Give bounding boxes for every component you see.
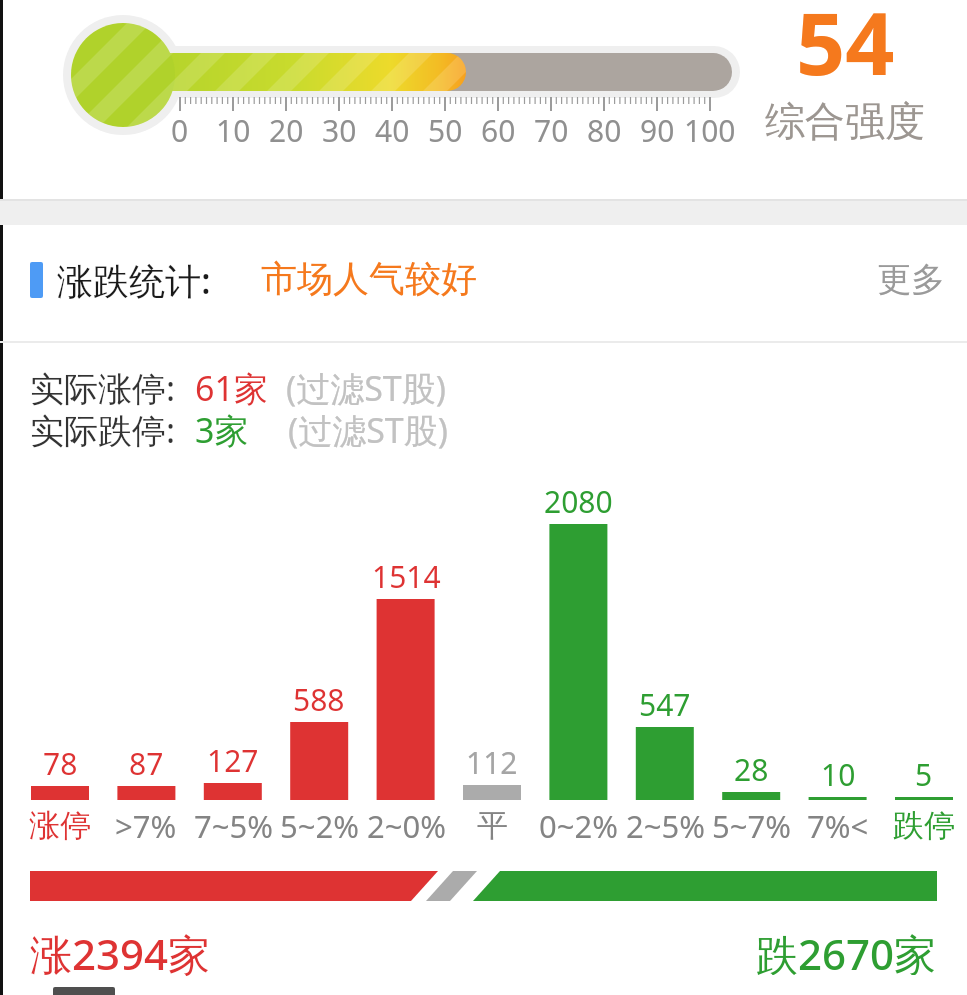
staticText: 61家 — [195, 365, 268, 411]
staticText: 80 — [587, 110, 622, 146]
staticText: 更多 — [877, 258, 945, 298]
staticText: 127 — [207, 740, 259, 778]
staticText: 实际涨停: — [30, 365, 176, 411]
staticText: 588 — [293, 679, 345, 717]
staticText: 2080 — [544, 481, 613, 519]
staticText: 10 — [821, 754, 856, 792]
staticText: 28 — [734, 749, 769, 787]
staticText: 2~0% — [367, 805, 446, 845]
staticText: 547 — [639, 684, 691, 722]
staticText: 112 — [466, 742, 518, 780]
staticText: 90 — [640, 110, 675, 146]
button[interactable]: 平 — [437, 805, 547, 845]
staticText: (过滤ST股) — [288, 407, 448, 453]
staticText: 100 — [684, 110, 736, 146]
staticText: 30 — [322, 110, 357, 146]
staticText: 87 — [129, 743, 164, 781]
staticText: 7%< — [807, 805, 869, 845]
staticText: 0~2% — [539, 805, 618, 845]
staticText: 54 — [796, 0, 895, 83]
staticText: 40 — [375, 110, 410, 146]
staticText: 市场人气较好 — [261, 256, 477, 301]
staticText: 50 — [428, 110, 463, 146]
staticText: 综合强度 — [765, 96, 925, 142]
staticText: 3家 — [195, 407, 249, 453]
button[interactable]: 更多 — [845, 258, 945, 298]
button[interactable]: 7~5% — [178, 805, 288, 845]
staticText: 5~7% — [712, 805, 791, 845]
staticText: 0 — [171, 110, 189, 146]
staticText: (过滤ST股) — [286, 365, 446, 411]
staticText: 10 — [216, 110, 251, 146]
staticText: >7% — [115, 805, 177, 845]
staticText: 60 — [481, 110, 516, 146]
button[interactable]: 5~2% — [264, 805, 374, 845]
staticText: 1514 — [372, 556, 441, 594]
button[interactable]: 跌停 — [869, 805, 967, 845]
staticText: 70 — [534, 110, 569, 146]
button[interactable]: 2~0% — [351, 805, 461, 845]
staticText: 20 — [269, 110, 304, 146]
staticText: 5 — [915, 754, 933, 792]
staticText: 78 — [43, 743, 78, 781]
staticText: 5~2% — [280, 805, 359, 845]
staticText: 涨2394家 — [30, 925, 211, 982]
staticText: 跌2670家 — [756, 925, 937, 975]
button[interactable]: >7% — [91, 805, 201, 845]
button[interactable]: 2~5% — [610, 805, 720, 845]
button[interactable]: 0~2% — [523, 805, 633, 845]
staticText: 实际跌停: — [30, 407, 176, 453]
staticText: 跌停 — [893, 806, 955, 845]
staticText: 2~5% — [626, 805, 705, 845]
button[interactable]: 5~7% — [696, 805, 806, 845]
staticText: 涨停 — [29, 806, 91, 845]
staticText: 平 — [477, 806, 508, 845]
button[interactable]: 涨停 — [5, 805, 115, 845]
staticText: 7~5% — [194, 805, 273, 845]
button[interactable]: 7%< — [783, 805, 893, 845]
staticText: 涨跌统计: — [57, 256, 211, 305]
